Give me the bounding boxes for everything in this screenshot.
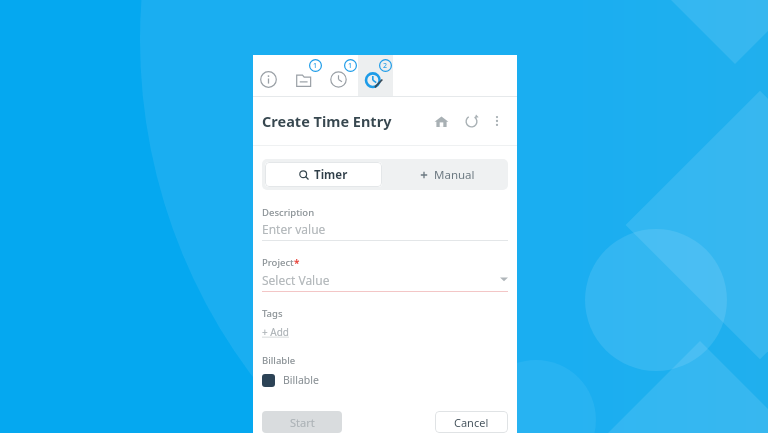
button[interactable]: More options: [486, 110, 508, 132]
button[interactable]: Timer: [265, 162, 382, 187]
button[interactable]: Enter value: [262, 221, 508, 241]
staticText: + Add: [262, 325, 290, 339]
staticText: Start: [290, 415, 315, 430]
staticText: Timer: [314, 167, 348, 183]
button[interactable]: + Add: [262, 325, 290, 339]
button[interactable]: Manual: [385, 159, 508, 190]
staticText: *: [294, 256, 300, 270]
button[interactable]: Billable: [262, 373, 319, 387]
button[interactable]: Info: [253, 55, 288, 97]
button[interactable]: Tasks: [288, 55, 323, 97]
staticText: 1: [348, 61, 353, 71]
staticText: Billable: [283, 373, 319, 387]
staticText: Cancel: [454, 415, 489, 430]
staticText: Tags: [262, 307, 283, 320]
staticText: Enter value: [262, 221, 326, 237]
button[interactable]: Refresh: [458, 108, 484, 134]
button[interactable]: Start: [262, 411, 342, 433]
button[interactable]: Select Value: [262, 272, 508, 292]
staticText: Select Value: [262, 272, 330, 288]
button[interactable]: Cancel: [435, 411, 508, 433]
staticText: 1: [313, 61, 318, 71]
button[interactable]: Home: [428, 108, 454, 134]
staticText: Create Time Entry: [262, 111, 392, 131]
button[interactable]: Time entry: [358, 55, 393, 97]
button[interactable]: History: [323, 55, 358, 97]
staticText: Billable: [262, 354, 296, 367]
staticText: Project: [262, 256, 294, 269]
staticText: Description: [262, 206, 315, 219]
staticText: Manual: [434, 167, 475, 183]
staticText: 2: [383, 61, 388, 71]
